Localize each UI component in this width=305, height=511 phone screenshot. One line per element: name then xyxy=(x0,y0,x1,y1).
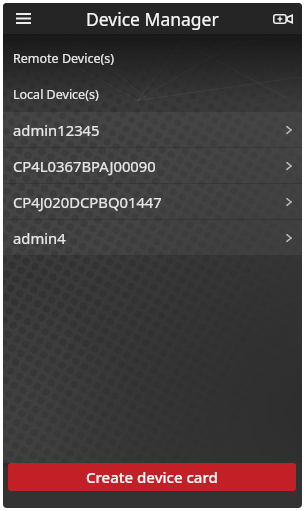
button[interactable]: admin12345 xyxy=(3,112,302,148)
staticText: CP4L0367BPAJ00090 xyxy=(13,156,156,176)
staticText: Local Device(s) xyxy=(13,86,99,103)
button[interactable]: CP4J020DCPBQ01447 xyxy=(3,184,302,220)
button[interactable]: Menu xyxy=(3,3,44,34)
staticText: Remote Device(s) xyxy=(13,50,114,67)
staticText: CP4J020DCPBQ01447 xyxy=(13,192,162,212)
button[interactable]: Add device xyxy=(264,3,302,34)
staticText: Create device card xyxy=(86,467,218,487)
staticText: admin12345 xyxy=(13,120,100,140)
button[interactable]: Create device card xyxy=(8,463,296,491)
button[interactable]: CP4L0367BPAJ00090 xyxy=(3,148,302,184)
staticText: admin4 xyxy=(13,228,66,248)
button[interactable]: admin4 xyxy=(3,220,302,256)
staticText: Device Manager xyxy=(86,7,219,31)
